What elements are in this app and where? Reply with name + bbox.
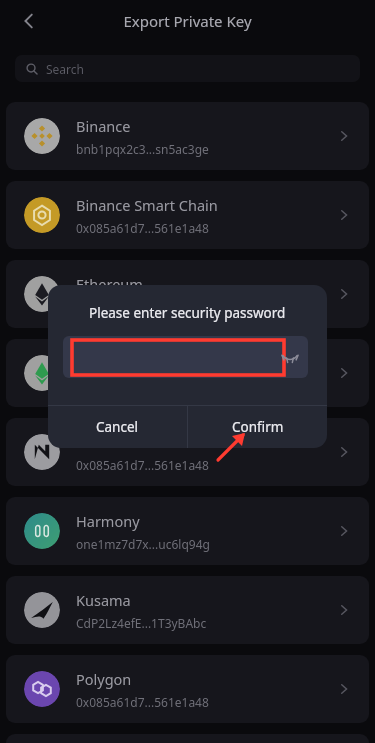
button[interactable]: Show password [277, 344, 303, 370]
staticText: 0x085a61d7...561e1a48 [76, 694, 209, 710]
staticText: bnb1pqx2c3...sn5ac3ge [76, 141, 209, 157]
staticText: Ethereum [76, 274, 143, 294]
button[interactable]: Back [10, 2, 48, 40]
button[interactable]: Binance Smart Chain [6, 181, 369, 249]
button[interactable]: NEAR [6, 418, 369, 486]
button[interactable]: Harmony [6, 497, 369, 565]
button[interactable]: Binance [6, 102, 369, 170]
staticText: Binance Smart Chain [76, 195, 218, 215]
button[interactable]: Ethereum Classic [6, 339, 369, 407]
button[interactable]: Ethereum [6, 260, 369, 328]
staticText: 0x085a61d7...561e1a48 [76, 457, 209, 473]
staticText: Search [46, 61, 84, 77]
button[interactable]: Confirm [188, 406, 327, 448]
staticText: 0x085a61d7...561e1a48 [76, 220, 209, 236]
staticText: Polygon [76, 669, 132, 689]
button[interactable]: Polygon [6, 655, 369, 723]
staticText: Kusama [76, 590, 131, 610]
staticText: Binance [76, 116, 131, 136]
staticText: Please enter security password [89, 304, 286, 322]
button[interactable]: Search [15, 55, 360, 82]
button[interactable]: Show password [63, 336, 308, 378]
staticText: Export Private Key [123, 11, 252, 31]
button[interactable]: Kusama [6, 576, 369, 644]
staticText: NEAR [76, 432, 114, 452]
staticText: CdP2Lz4efE...1T3yBAbc [76, 615, 207, 631]
staticText: Cancel [96, 418, 139, 436]
staticText: Harmony [76, 511, 140, 531]
staticText: 0x085a61d7...561e1a48 [76, 299, 209, 315]
staticText: one1mz7d7x...uc6lq94g [76, 536, 210, 552]
button[interactable]: Cancel [48, 406, 187, 448]
staticText: Confirm [232, 418, 284, 436]
